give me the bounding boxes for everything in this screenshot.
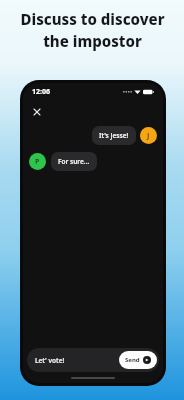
staticText: the impostor: [43, 31, 142, 51]
button[interactable]: For sure...: [51, 152, 97, 171]
button[interactable]: Close: [29, 104, 44, 119]
button[interactable]: Send: [119, 351, 157, 369]
staticText: Let' vote!: [35, 356, 65, 365]
staticText: It's Jesse!: [99, 131, 129, 140]
staticText: Send: [125, 356, 140, 364]
staticText: 12:06: [32, 87, 50, 97]
staticText: P: [35, 157, 40, 167]
button[interactable]: It's Jesse!: [92, 126, 136, 145]
staticText: Discuss to discover: [20, 9, 165, 29]
staticText: J: [147, 131, 150, 141]
button[interactable]: Player avatar: [29, 153, 46, 170]
staticText: For sure...: [58, 157, 90, 166]
button[interactable]: Jesse avatar: [140, 127, 157, 144]
